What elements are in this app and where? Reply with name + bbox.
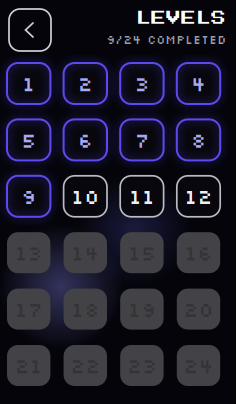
staticText: 9 — [21, 183, 36, 209]
staticText: 12 — [184, 183, 212, 209]
staticText: 22 — [70, 353, 100, 378]
staticText: 8 — [191, 127, 206, 153]
staticText: 11 — [129, 183, 155, 209]
staticText: 20 — [183, 296, 213, 322]
button[interactable]: Back — [9, 9, 51, 51]
staticText: 14 — [71, 240, 99, 265]
staticText: 4 — [191, 71, 206, 96]
button[interactable]: 11 — [120, 176, 164, 217]
staticText: 7 — [134, 127, 149, 153]
staticText: 19 — [128, 296, 156, 322]
staticText: 6 — [78, 127, 93, 153]
button[interactable]: 20 — [177, 289, 220, 330]
button[interactable]: 23 — [120, 345, 164, 386]
staticText: 9/24 COMPLETED — [106, 32, 226, 47]
button[interactable]: 21 — [7, 345, 50, 386]
staticText: LEVELS — [136, 11, 226, 26]
staticText: 16 — [184, 240, 212, 265]
button[interactable]: 19 — [120, 289, 164, 330]
button[interactable]: 5 — [7, 119, 50, 160]
button[interactable]: 10 — [64, 176, 107, 217]
button[interactable]: 12 — [177, 176, 220, 217]
button[interactable]: 22 — [64, 345, 107, 386]
staticText: 23 — [127, 353, 157, 378]
button[interactable]: 7 — [120, 119, 164, 160]
button[interactable]: 18 — [64, 289, 107, 330]
button[interactable]: 16 — [177, 232, 220, 273]
button[interactable]: 14 — [64, 232, 107, 273]
button[interactable]: 24 — [177, 345, 220, 386]
staticText: 1 — [22, 71, 35, 96]
staticText: 10 — [71, 183, 99, 209]
button[interactable]: 4 — [177, 63, 220, 104]
button[interactable]: 1 — [7, 63, 50, 104]
staticText: 5 — [21, 127, 36, 153]
staticText: 3 — [134, 71, 149, 96]
button[interactable]: 9 — [7, 176, 50, 217]
button[interactable]: 13 — [7, 232, 50, 273]
button[interactable]: 2 — [64, 63, 107, 104]
button[interactable]: 3 — [120, 63, 164, 104]
button[interactable]: 6 — [64, 119, 107, 160]
button[interactable]: 17 — [7, 289, 50, 330]
button[interactable]: 15 — [120, 232, 164, 273]
staticText: 24 — [183, 353, 213, 378]
staticText: 15 — [128, 240, 156, 265]
staticText: 18 — [71, 296, 99, 322]
staticText: 13 — [15, 240, 43, 265]
staticText: 2 — [78, 71, 93, 96]
staticText: 21 — [15, 353, 43, 378]
staticText: 17 — [15, 296, 43, 322]
button[interactable]: 8 — [177, 119, 220, 160]
